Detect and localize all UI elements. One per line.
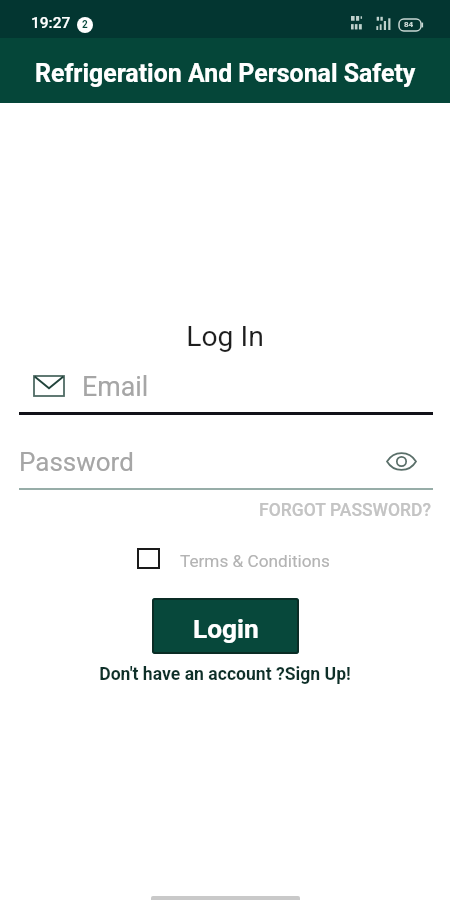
staticText: 2 xyxy=(82,19,88,31)
staticText: Login xyxy=(193,614,259,645)
button[interactable]: FORGOT PASSWORD? xyxy=(0,500,431,521)
button[interactable]: Login xyxy=(152,598,299,654)
button[interactable]: Accept terms and conditions xyxy=(137,548,160,569)
staticText: Refrigeration And Personal Safety xyxy=(35,59,416,88)
staticText: Log In xyxy=(0,320,450,353)
staticText: 19:27 xyxy=(31,14,71,32)
button[interactable]: Terms & Conditions xyxy=(180,551,330,571)
button[interactable]: Show password xyxy=(385,445,417,477)
staticText: Email xyxy=(82,371,149,399)
button[interactable]: Don't have an account ?Sign Up! xyxy=(0,664,450,685)
staticText: Password xyxy=(19,447,134,477)
staticText: 84 xyxy=(404,20,414,29)
